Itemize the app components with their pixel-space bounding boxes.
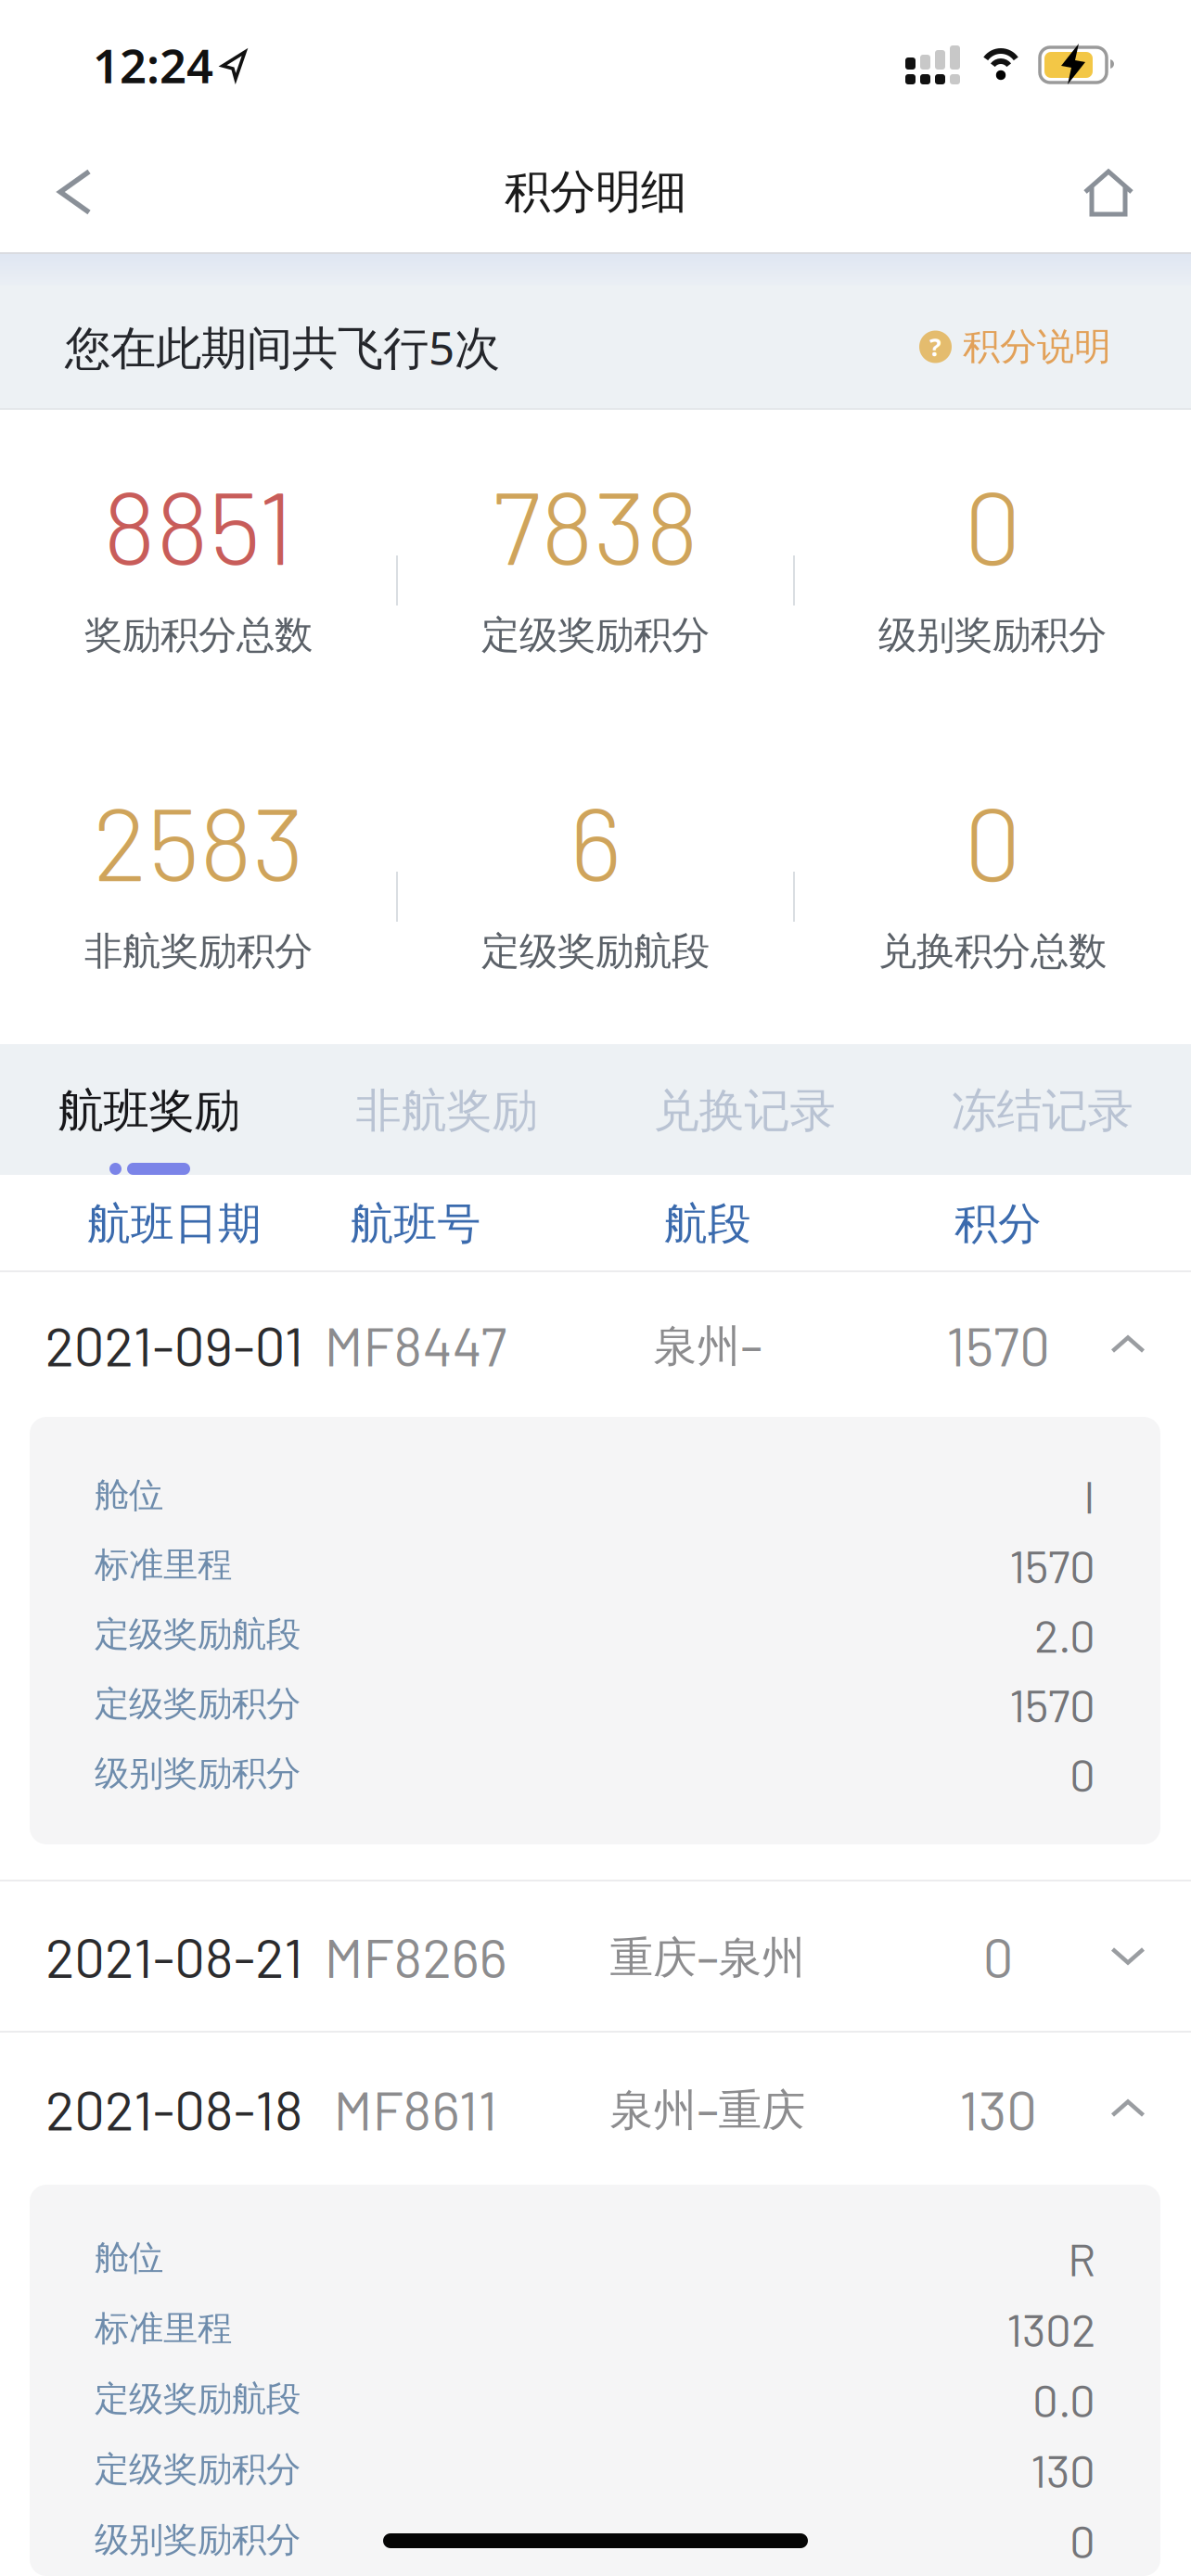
staticText: 定级奖励航段 xyxy=(481,928,710,975)
staticText: 定级奖励积分 xyxy=(95,2448,301,2491)
button[interactable]: 航班奖励 xyxy=(0,1055,298,1167)
staticText: 舱位 xyxy=(95,2237,163,2279)
staticText: R xyxy=(1068,2230,1095,2285)
staticText: 标准里程 xyxy=(95,2307,232,2350)
button[interactable]: 2021-08-18 xyxy=(0,2033,1191,2185)
staticText: 2583 xyxy=(93,779,304,902)
staticText: 0 xyxy=(983,1923,1013,1989)
staticText: 冻结记录 xyxy=(951,1083,1133,1139)
staticText: 级别奖励积分 xyxy=(95,1752,301,1795)
staticText: 定级奖励积分 xyxy=(95,1683,301,1725)
staticText: 2.0 xyxy=(1034,1607,1095,1662)
staticText: 8851 xyxy=(103,462,294,585)
staticText: 2021-09-01 xyxy=(45,1312,304,1377)
staticText: 2021-08-21 xyxy=(45,1923,303,1989)
staticText: 0 xyxy=(964,779,1021,902)
staticText: 航班号 xyxy=(350,1197,481,1251)
staticText: 12:24 xyxy=(93,34,213,96)
staticText: 2021-08-18 xyxy=(45,2076,303,2141)
staticText: MF8266 xyxy=(324,1923,507,1989)
staticText: 级别奖励积分 xyxy=(878,612,1107,659)
staticText: 级别奖励积分 xyxy=(95,2519,301,2561)
staticText: 泉州–重庆 xyxy=(610,2080,806,2137)
staticText: 奖励积分总数 xyxy=(84,612,313,659)
button[interactable]: Back xyxy=(0,159,95,224)
button[interactable]: 积分说明 xyxy=(919,324,1191,370)
staticText: 兑换记录 xyxy=(653,1083,835,1139)
staticText: 0 xyxy=(1069,1746,1095,1801)
staticText: MF8447 xyxy=(324,1312,507,1377)
staticText: 1570 xyxy=(946,1312,1050,1377)
staticText: 您在此期间共飞行5次 xyxy=(65,316,500,377)
staticText: 兑换积分总数 xyxy=(878,928,1107,975)
button[interactable]: 兑换记录 xyxy=(595,1055,893,1167)
staticText: 1570 xyxy=(1009,1676,1095,1731)
staticText: 舱位 xyxy=(95,1474,163,1517)
button[interactable]: 非航奖励 xyxy=(298,1055,595,1167)
staticText: 1570 xyxy=(1009,1537,1095,1592)
staticText: 7838 xyxy=(493,462,698,585)
staticText: MF8611 xyxy=(333,2076,498,2141)
staticText: 标准里程 xyxy=(95,1544,232,1586)
staticText: I xyxy=(1083,1468,1095,1523)
staticText: 非航奖励 xyxy=(356,1083,538,1139)
staticText: 130 xyxy=(1031,2442,1095,2497)
staticText: 0 xyxy=(1069,2512,1095,2567)
button[interactable]: 2021-08-21 xyxy=(0,1881,1191,2031)
staticText: 积分 xyxy=(954,1197,1042,1251)
staticText: 重庆–泉州 xyxy=(610,1927,806,1985)
staticText: 积分说明 xyxy=(963,324,1111,370)
staticText: 泉州– xyxy=(653,1316,762,1373)
staticText: 定级奖励积分 xyxy=(481,612,710,659)
staticText: ? xyxy=(929,330,941,363)
staticText: 定级奖励航段 xyxy=(95,1613,301,1656)
staticText: 航班日期 xyxy=(87,1197,262,1251)
staticText: 非航奖励积分 xyxy=(84,928,313,975)
button[interactable]: 冻结记录 xyxy=(893,1055,1191,1167)
staticText: 1302 xyxy=(1006,2301,1095,2356)
staticText: 积分明细 xyxy=(505,164,686,220)
staticText: 0.0 xyxy=(1032,2371,1095,2426)
staticText: 6 xyxy=(570,779,621,902)
staticText: 定级奖励航段 xyxy=(95,2378,301,2420)
staticText: 0 xyxy=(964,462,1021,585)
staticText: 航段 xyxy=(664,1197,751,1251)
button[interactable]: Home xyxy=(1083,159,1191,225)
button[interactable]: 2021-09-01 xyxy=(0,1272,1191,1417)
staticText: 130 xyxy=(959,2076,1037,2141)
staticText: 航班奖励 xyxy=(58,1083,240,1139)
